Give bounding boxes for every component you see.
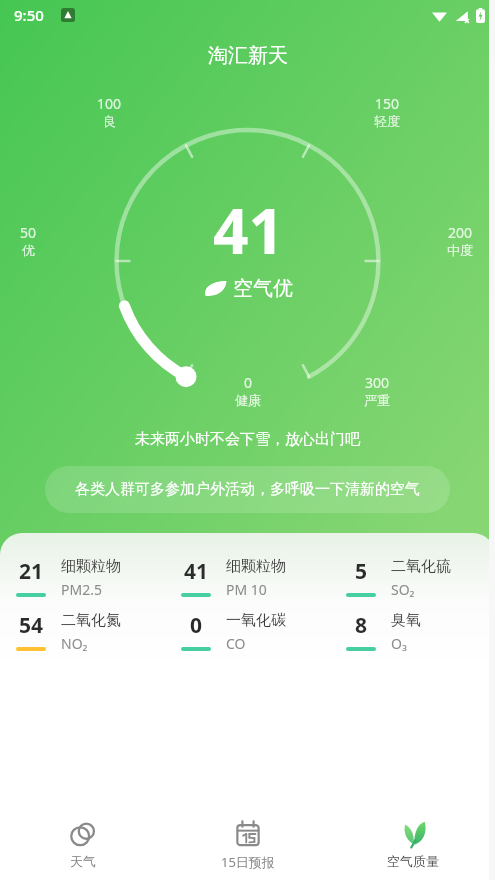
button[interactable]: 21 [0, 557, 165, 599]
button[interactable]: 各类人群可多参加户外活动，多呼吸一下清新的空气 [45, 466, 450, 513]
staticText: 轻度 [374, 113, 400, 129]
staticText: 200 [448, 223, 473, 242]
staticText: 空气优 [233, 276, 293, 301]
staticText: 空气质量 [387, 853, 439, 869]
staticText: 300 [365, 373, 390, 392]
button[interactable]: 空气质量 [330, 810, 495, 880]
staticText: 41 [213, 188, 284, 272]
button[interactable]: 0 [165, 611, 330, 653]
staticText: PM 10 [226, 580, 267, 599]
staticText: 0 [190, 611, 203, 640]
staticText: 41 [184, 557, 209, 586]
staticText: 细颗粒物 [61, 557, 121, 576]
staticText: 50 [20, 223, 37, 242]
staticText: 二氧化氮 [61, 611, 121, 630]
button[interactable]: 54 [0, 611, 165, 653]
staticText: 严重 [364, 392, 390, 408]
staticText: 未来两小时不会下雪，放心出门吧 [0, 430, 495, 449]
staticText: 良 [103, 113, 116, 129]
staticText: 21 [19, 557, 44, 586]
staticText: 100 [97, 94, 122, 113]
other: 空气质量 [399, 820, 427, 848]
staticText: 150 [375, 94, 400, 113]
staticText: 二氧化硫 [391, 557, 451, 576]
button[interactable]: 天气 [0, 810, 165, 880]
staticText: 健康 [235, 392, 261, 408]
staticText: 5 [355, 557, 368, 586]
button[interactable]: 41 [165, 557, 330, 599]
staticText: 8 [355, 611, 368, 640]
button[interactable]: 8 [330, 611, 495, 653]
staticText: CO [226, 634, 246, 653]
staticText: PM2.5 [61, 580, 102, 599]
staticText: 中度 [447, 242, 473, 258]
staticText: SO₂ [391, 580, 415, 599]
button[interactable]: 15日预报 [165, 810, 330, 880]
staticText: 各类人群可多参加户外活动，多呼吸一下清新的空气 [67, 480, 428, 499]
button[interactable]: 5 [330, 557, 495, 599]
other: 天气 [69, 820, 97, 848]
staticText: 15日预报 [221, 853, 275, 871]
staticText: 一氧化碳 [226, 611, 286, 630]
staticText: 天气 [70, 853, 96, 869]
staticText: 9:50 [14, 5, 44, 25]
other: 15日预报 [234, 820, 262, 848]
staticText: NO₂ [61, 634, 88, 653]
staticText: 优 [22, 242, 35, 258]
staticText: 54 [19, 611, 44, 640]
staticText: 臭氧 [391, 611, 421, 630]
staticText: 淘汇新天 [208, 43, 288, 68]
staticText: 细颗粒物 [226, 557, 286, 576]
staticText: 0 [244, 373, 253, 392]
staticText: O₃ [391, 634, 407, 653]
